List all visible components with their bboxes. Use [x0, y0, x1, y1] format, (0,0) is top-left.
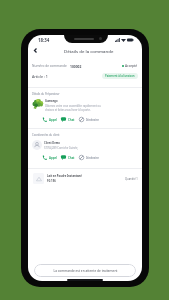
staticText: Appel: [49, 156, 57, 160]
button[interactable]: Chat: [61, 154, 75, 161]
staticText: Appel: [49, 118, 57, 122]
staticText: Obtenez votre crue assemblée rapidement …: [45, 104, 101, 112]
staticText: Numéro de commande: [32, 64, 67, 68]
button[interactable]: Appel: [42, 116, 57, 123]
button[interactable]: Itinéraire: [79, 116, 99, 123]
staticText: Détails de la commande: [64, 48, 114, 54]
staticText: Chat: [68, 118, 75, 122]
staticText: 57764,289 Corniche Guinée,: [44, 146, 79, 150]
staticText: 18:34: [38, 37, 50, 43]
staticText: Itinéraire: [86, 118, 99, 122]
staticText: Coordonnées du client: [32, 133, 60, 137]
staticText: Itinéraire: [86, 156, 99, 160]
staticText: Chat: [68, 156, 75, 160]
staticText: Quantité 1: [125, 177, 138, 181]
button[interactable]: Itinéraire: [79, 154, 99, 161]
staticText: Gumango: [45, 99, 58, 103]
staticText: FG 156: [47, 179, 56, 183]
button[interactable]: Back: [30, 45, 41, 56]
button[interactable]: Chat: [61, 116, 75, 123]
staticText: Client Demo: [44, 141, 60, 145]
staticText: Accepté: [125, 64, 138, 68]
button[interactable]: Appel: [42, 154, 57, 161]
staticText: Détails du Préparateur: [32, 92, 60, 96]
staticText: 100002: [70, 64, 82, 68]
staticText: La commande est en attente de traitement: [53, 269, 118, 273]
staticText: Lait en Poudre Instantané: [47, 174, 82, 178]
staticText: Paiement à la livraison: [105, 74, 135, 78]
button[interactable]: La commande est en attente de traitement: [34, 264, 136, 277]
staticText: Article : 1: [32, 74, 48, 79]
